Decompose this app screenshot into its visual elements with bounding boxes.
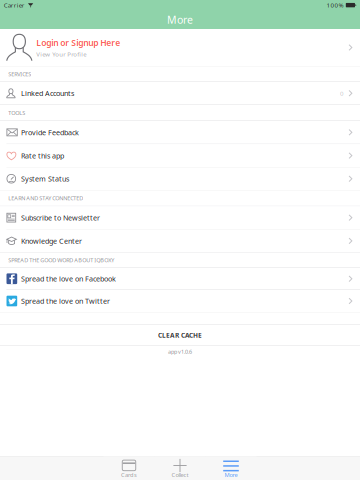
staticText: app v1.0.6 <box>168 348 192 355</box>
staticText: Collect <box>171 471 188 479</box>
button[interactable]: Provide Feedback <box>0 121 360 144</box>
staticText: More <box>224 471 237 479</box>
staticText: Rate this app <box>21 151 64 160</box>
button[interactable]: Spread the love on Twitter <box>0 290 360 312</box>
staticText: Linked Accounts <box>21 88 74 98</box>
button[interactable]: Spread the love on Facebook <box>0 268 360 289</box>
staticText: Subscribe to Newsletter <box>21 213 100 222</box>
staticText: SPREAD THE GOOD WORD ABOUT IQBOXY <box>8 256 114 264</box>
button[interactable]: Linked Accounts <box>0 82 360 104</box>
button[interactable]: Collect <box>154 456 205 480</box>
staticText: Login or Signup Here <box>36 37 120 48</box>
staticText: SERVICES <box>8 70 31 78</box>
staticText: View Your Profile <box>36 50 86 58</box>
staticText: Spread the love on Facebook <box>21 274 116 284</box>
button[interactable]: Knowledge Center <box>0 229 360 252</box>
button[interactable]: Cards <box>103 456 154 480</box>
staticText: LEARN AND STAY CONNECTED <box>8 194 83 202</box>
staticText: Carrier <box>4 1 25 9</box>
staticText: 0 <box>340 89 344 97</box>
staticText: TOOLS <box>8 109 25 116</box>
button[interactable]: Login or Signup Here <box>0 29 360 66</box>
button[interactable]: Rate this app <box>0 144 360 167</box>
staticText: 100% <box>326 1 343 9</box>
staticText: Spread the love on Twitter <box>21 296 110 306</box>
staticText: Cards <box>121 471 137 479</box>
staticText: More <box>167 12 193 27</box>
staticText: System Status <box>21 174 69 184</box>
staticText: Provide Feedback <box>21 127 79 137</box>
button[interactable]: CLEAR CACHE <box>0 325 360 345</box>
button[interactable]: System Status <box>0 167 360 190</box>
staticText: Knowledge Center <box>21 236 82 246</box>
staticText: CLEAR CACHE <box>158 331 202 340</box>
button[interactable]: Subscribe to Newsletter <box>0 206 360 229</box>
button[interactable]: More <box>205 456 256 480</box>
